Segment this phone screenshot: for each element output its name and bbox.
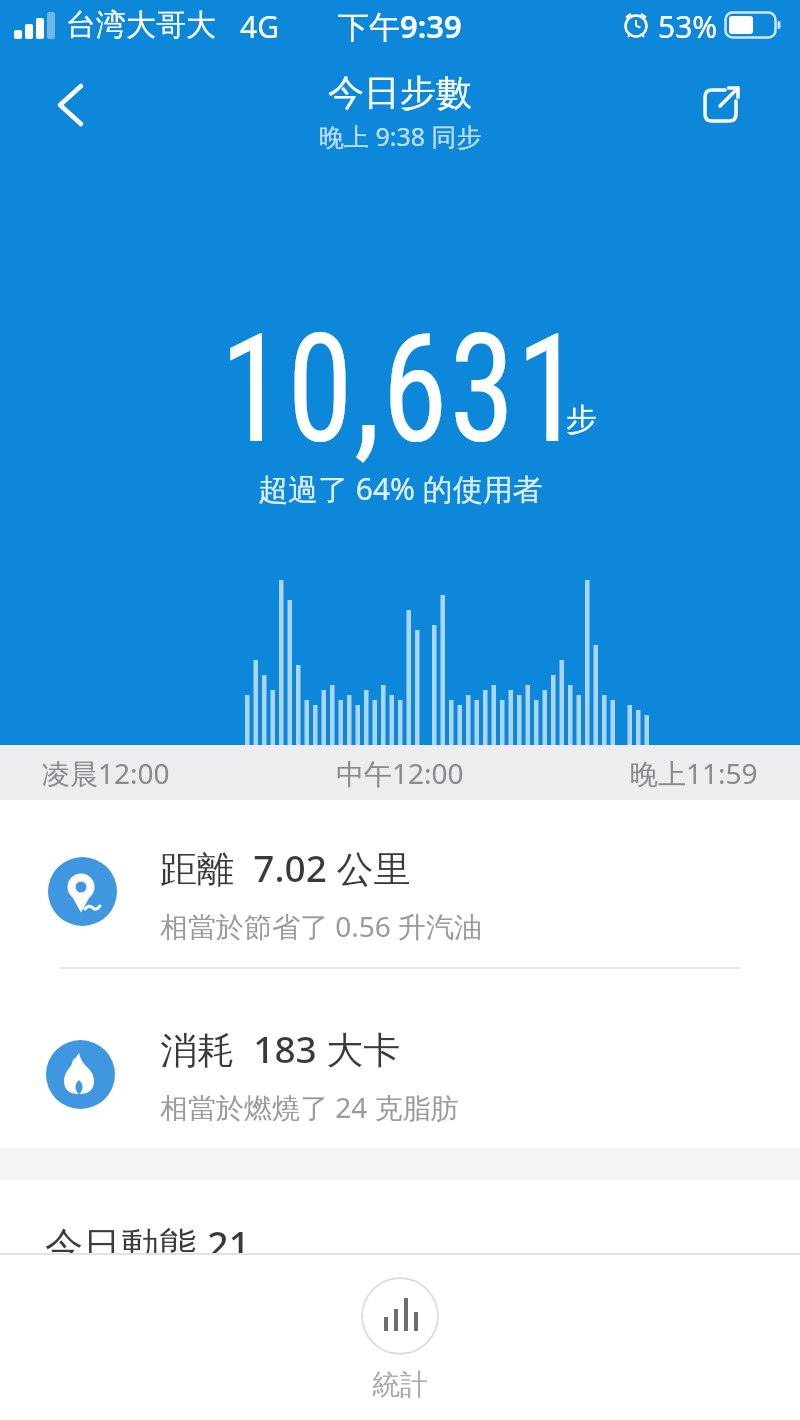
- staticText: 超過了 64% 的使用者: [258, 468, 543, 509]
- staticText: 今日步數: [328, 70, 472, 115]
- staticText: 消耗 183 大卡: [160, 1023, 401, 1074]
- button[interactable]: 統計: [361, 1277, 439, 1402]
- staticText: 中午12:00: [336, 754, 464, 792]
- button[interactable]: 距離 7.02 公里: [0, 800, 800, 967]
- staticText: 距離 7.02 公里: [160, 842, 411, 893]
- staticText: 相當於節省了 0.56 升汽油: [160, 907, 483, 945]
- button[interactable]: [40, 75, 100, 135]
- staticText: 10,631: [220, 302, 584, 478]
- staticText: 凌晨12:00: [42, 754, 170, 792]
- staticText: 53%: [658, 6, 718, 47]
- staticText: 下午9:39: [338, 5, 462, 47]
- staticText: 相當於燃燒了 24 克脂肪: [160, 1088, 459, 1126]
- staticText: 今日動態 21: [45, 1218, 251, 1270]
- staticText: 4G: [240, 6, 279, 47]
- staticText: 統計: [372, 1367, 428, 1402]
- staticText: 步: [566, 400, 597, 439]
- staticText: 台湾大哥大: [66, 6, 216, 44]
- staticText: 晚上 9:38 同步: [319, 119, 482, 153]
- button[interactable]: 消耗 183 大卡: [0, 968, 800, 1148]
- staticText: 晚上11:59: [630, 754, 758, 792]
- button[interactable]: [688, 72, 754, 138]
